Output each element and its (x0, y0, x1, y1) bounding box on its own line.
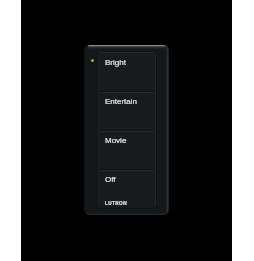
button[interactable]: Bright (98, 52, 156, 91)
staticText: Off (105, 175, 116, 184)
staticText: Entertain (105, 97, 138, 106)
staticText: Movie (105, 136, 127, 145)
staticText: LUTRON (105, 201, 127, 206)
other: Lutron Pico scene keypad (84, 45, 169, 215)
button[interactable]: Movie (98, 131, 156, 169)
staticText: Bright (105, 58, 126, 67)
button[interactable]: Off (98, 170, 156, 208)
button[interactable]: Entertain (98, 92, 156, 130)
